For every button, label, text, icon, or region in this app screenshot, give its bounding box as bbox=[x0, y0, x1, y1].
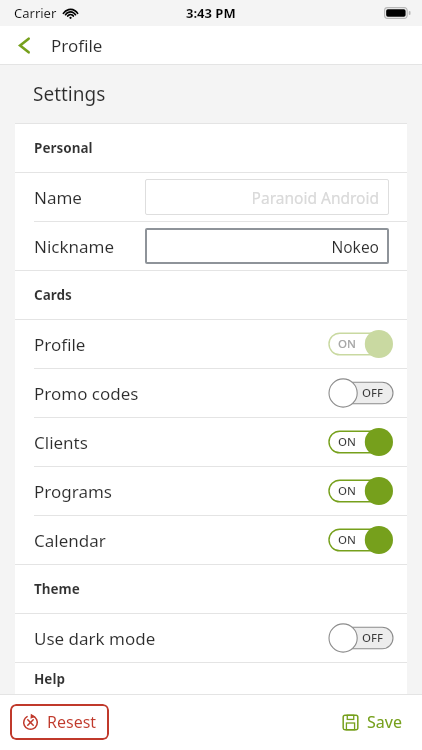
staticText: ON bbox=[338, 336, 356, 352]
button[interactable]: Switch off bbox=[329, 623, 393, 653]
button[interactable]: Name bbox=[15, 173, 407, 221]
staticText: Programs bbox=[34, 480, 112, 503]
staticText: Calendar bbox=[34, 529, 106, 552]
staticText: OFF bbox=[362, 630, 384, 646]
button[interactable]: Calendar bbox=[15, 516, 407, 564]
button[interactable]: Promo codes bbox=[15, 369, 407, 417]
staticText: Name bbox=[34, 186, 82, 209]
staticText: Nickname bbox=[34, 235, 115, 258]
button[interactable]: Resest bbox=[10, 704, 109, 740]
button[interactable]: Switch on bbox=[329, 525, 393, 555]
staticText: Nokeo bbox=[331, 236, 379, 257]
staticText: Save bbox=[367, 711, 402, 733]
button[interactable]: Back bbox=[0, 30, 43, 61]
staticText: Cards bbox=[34, 286, 72, 304]
staticText: 3:43 PM bbox=[186, 4, 236, 22]
staticText: Theme bbox=[34, 580, 80, 598]
staticText: Resest bbox=[47, 711, 97, 733]
staticText: Personal bbox=[34, 139, 93, 157]
staticText: Profile bbox=[34, 333, 86, 356]
staticText: Settings bbox=[33, 81, 106, 107]
button[interactable]: Switch on bbox=[329, 329, 393, 359]
staticText: Use dark mode bbox=[34, 627, 156, 650]
button[interactable]: Switch on bbox=[329, 476, 393, 506]
staticText: Clients bbox=[34, 431, 88, 454]
staticText: Help bbox=[34, 670, 65, 688]
staticText: Paranoid Android bbox=[251, 187, 379, 208]
button[interactable]: Profile bbox=[15, 320, 407, 368]
button[interactable]: Nickname bbox=[15, 222, 407, 270]
staticText: OFF bbox=[362, 385, 384, 401]
staticText: Profile bbox=[51, 34, 103, 57]
staticText: ON bbox=[338, 483, 356, 499]
button[interactable]: Use dark mode bbox=[15, 614, 407, 662]
staticText: Carrier bbox=[14, 4, 57, 22]
button[interactable]: Programs bbox=[15, 467, 407, 515]
staticText: Promo codes bbox=[34, 382, 139, 405]
button[interactable]: Switch on bbox=[329, 427, 393, 457]
button[interactable]: Save bbox=[338, 705, 406, 739]
staticText: ON bbox=[338, 532, 356, 548]
staticText: ON bbox=[338, 434, 356, 450]
button[interactable]: Switch off bbox=[329, 378, 393, 408]
button[interactable]: Clients bbox=[15, 418, 407, 466]
